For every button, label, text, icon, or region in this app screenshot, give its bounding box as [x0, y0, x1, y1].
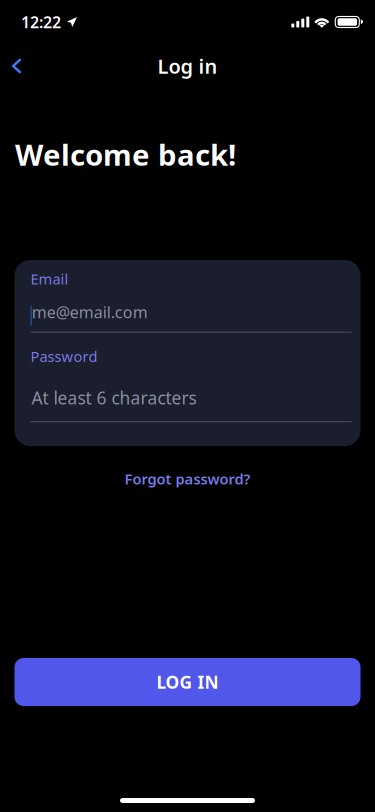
- button[interactable]: Back: [0, 44, 34, 88]
- staticText: Forgot password?: [124, 469, 250, 489]
- staticText: Log in: [157, 53, 217, 79]
- staticText: Welcome back!: [15, 135, 236, 174]
- button[interactable]: LOG IN: [14, 658, 360, 706]
- staticText: Email: [30, 269, 68, 288]
- button[interactable]: me@email.com: [14, 301, 360, 323]
- button[interactable]: At least 6 characters: [14, 386, 360, 409]
- staticText: Password: [30, 347, 97, 366]
- staticText: LOG IN: [156, 670, 218, 693]
- staticText: At least 6 characters: [31, 386, 196, 409]
- button[interactable]: Forgot password?: [114, 465, 260, 493]
- staticText: me@email.com: [32, 301, 148, 323]
- staticText: 12:22: [21, 11, 61, 33]
